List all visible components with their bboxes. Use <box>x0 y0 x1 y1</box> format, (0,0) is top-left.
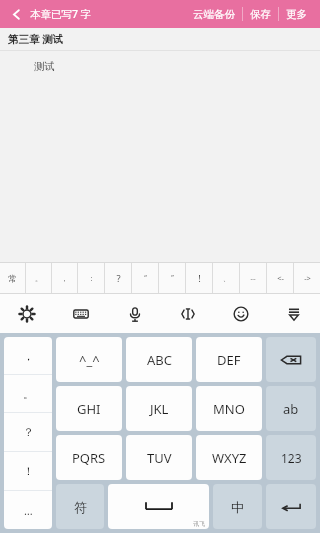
button[interactable]: JKL <box>126 386 192 431</box>
staticText: ， <box>61 274 68 283</box>
button[interactable]: … <box>240 263 266 293</box>
staticText: … <box>24 503 33 518</box>
staticText: WXYZ <box>212 449 247 467</box>
staticText: ^_^ <box>79 351 100 369</box>
button[interactable]: 中 <box>213 484 262 529</box>
button[interactable]: GHI <box>56 386 122 431</box>
staticText: -> <box>304 273 311 283</box>
button[interactable]: DEF <box>196 337 262 382</box>
staticText: PQRS <box>72 449 106 467</box>
button[interactable]: Back <box>0 0 98 28</box>
staticText: 本章已写7 字 <box>30 7 92 21</box>
button[interactable]: TUV <box>126 435 192 480</box>
button[interactable]: Enter <box>266 484 316 529</box>
staticText: 讯飞 <box>193 520 205 528</box>
staticText: ab <box>283 400 299 418</box>
button[interactable]: Keyboard <box>54 294 108 333</box>
button[interactable]: Handwriting <box>161 294 214 333</box>
other: Back <box>10 8 23 21</box>
button[interactable]: 更多 <box>279 0 314 28</box>
button[interactable]: Emoji <box>214 294 267 333</box>
button[interactable]: Settings <box>0 294 54 333</box>
staticText: ABC <box>147 351 172 369</box>
button[interactable]: ^_^ <box>56 337 122 382</box>
button[interactable]: 123 <box>266 435 316 480</box>
staticText: 。 <box>35 274 42 283</box>
button[interactable]: <- <box>267 263 293 293</box>
button[interactable]: ! <box>186 263 212 293</box>
staticText: 。 <box>23 387 34 401</box>
button[interactable]: 符 <box>56 484 104 529</box>
staticText: “ <box>144 273 147 283</box>
button[interactable]: Voice <box>108 294 161 333</box>
staticText: 常 <box>8 273 17 284</box>
staticText: JKL <box>150 400 169 418</box>
button[interactable]: ” <box>159 263 185 293</box>
button[interactable]: … <box>4 491 52 529</box>
staticText: ? <box>116 272 121 285</box>
button[interactable]: -> <box>294 263 320 293</box>
staticText: 123 <box>281 450 302 466</box>
button[interactable]: ABC <box>126 337 192 382</box>
button[interactable]: Backspace <box>266 337 316 382</box>
button[interactable]: ： <box>78 263 104 293</box>
staticText: 中 <box>231 499 244 515</box>
button[interactable]: ？ <box>4 413 52 451</box>
button[interactable]: Hide <box>267 294 320 333</box>
button[interactable]: ? <box>105 263 131 293</box>
staticText: GHI <box>77 400 101 418</box>
button[interactable]: “ <box>132 263 158 293</box>
button[interactable]: MNO <box>196 386 262 431</box>
button[interactable]: 云端备份 <box>186 0 242 28</box>
staticText: 第三章 测试 <box>8 32 64 46</box>
staticText: 保存 <box>250 8 271 21</box>
button[interactable]: ab <box>266 386 316 431</box>
button[interactable]: ！ <box>4 452 52 490</box>
button[interactable]: 常 <box>0 263 25 293</box>
button[interactable]: 保存 <box>243 0 278 28</box>
button[interactable]: 。 <box>4 375 52 412</box>
staticText: ” <box>171 273 174 283</box>
staticText: ？ <box>23 425 34 439</box>
staticText: 云端备份 <box>193 8 235 21</box>
staticText: 测试 <box>34 60 55 73</box>
staticText: ！ <box>23 464 34 478</box>
staticText: MNO <box>213 400 245 418</box>
staticText: ! <box>198 272 201 285</box>
staticText: DEF <box>217 351 241 369</box>
button[interactable]: WXYZ <box>196 435 262 480</box>
staticText: 更多 <box>286 8 307 21</box>
staticText: ， <box>23 349 34 363</box>
staticText: 符 <box>74 499 87 515</box>
staticText: 、 <box>223 274 230 283</box>
staticText: ： <box>88 274 95 283</box>
staticText: <- <box>277 273 284 283</box>
button[interactable]: Space <box>108 484 209 529</box>
staticText: TUV <box>147 449 172 467</box>
button[interactable]: ， <box>52 263 77 293</box>
button[interactable]: ， <box>4 337 52 374</box>
staticText: … <box>250 273 256 283</box>
button[interactable]: 第三章 测试 <box>0 28 320 50</box>
button[interactable]: PQRS <box>56 435 122 480</box>
